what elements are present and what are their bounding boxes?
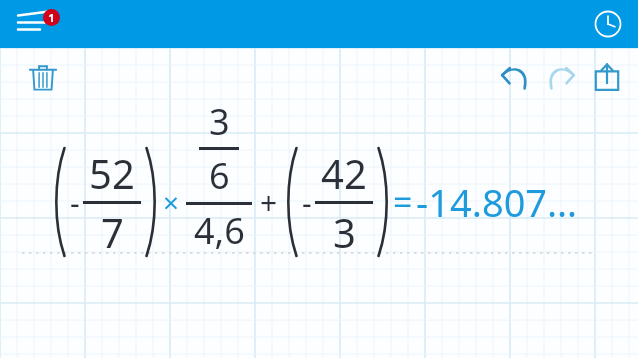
staticText: 3 [333, 205, 356, 259]
staticText: 1 [48, 10, 55, 25]
staticText: × [163, 183, 180, 221]
staticText: 6 [209, 151, 230, 200]
staticText: + [260, 182, 278, 223]
button[interactable]: Undo [492, 54, 538, 100]
staticText: - [70, 182, 80, 223]
staticText: = [393, 179, 413, 225]
button[interactable]: Share [584, 54, 630, 100]
staticText: 42 [321, 146, 367, 200]
staticText: 4,6 [194, 206, 245, 255]
button[interactable]: Menu [14, 0, 62, 48]
staticText: 7 [101, 205, 124, 259]
staticText: 3 [209, 97, 230, 146]
button[interactable]: History [586, 2, 630, 46]
button[interactable]: Redo [538, 54, 584, 100]
staticText: 52 [89, 146, 135, 200]
staticText: - [302, 182, 312, 223]
button[interactable]: Delete [20, 54, 66, 100]
staticText: -14.807… [416, 176, 578, 228]
